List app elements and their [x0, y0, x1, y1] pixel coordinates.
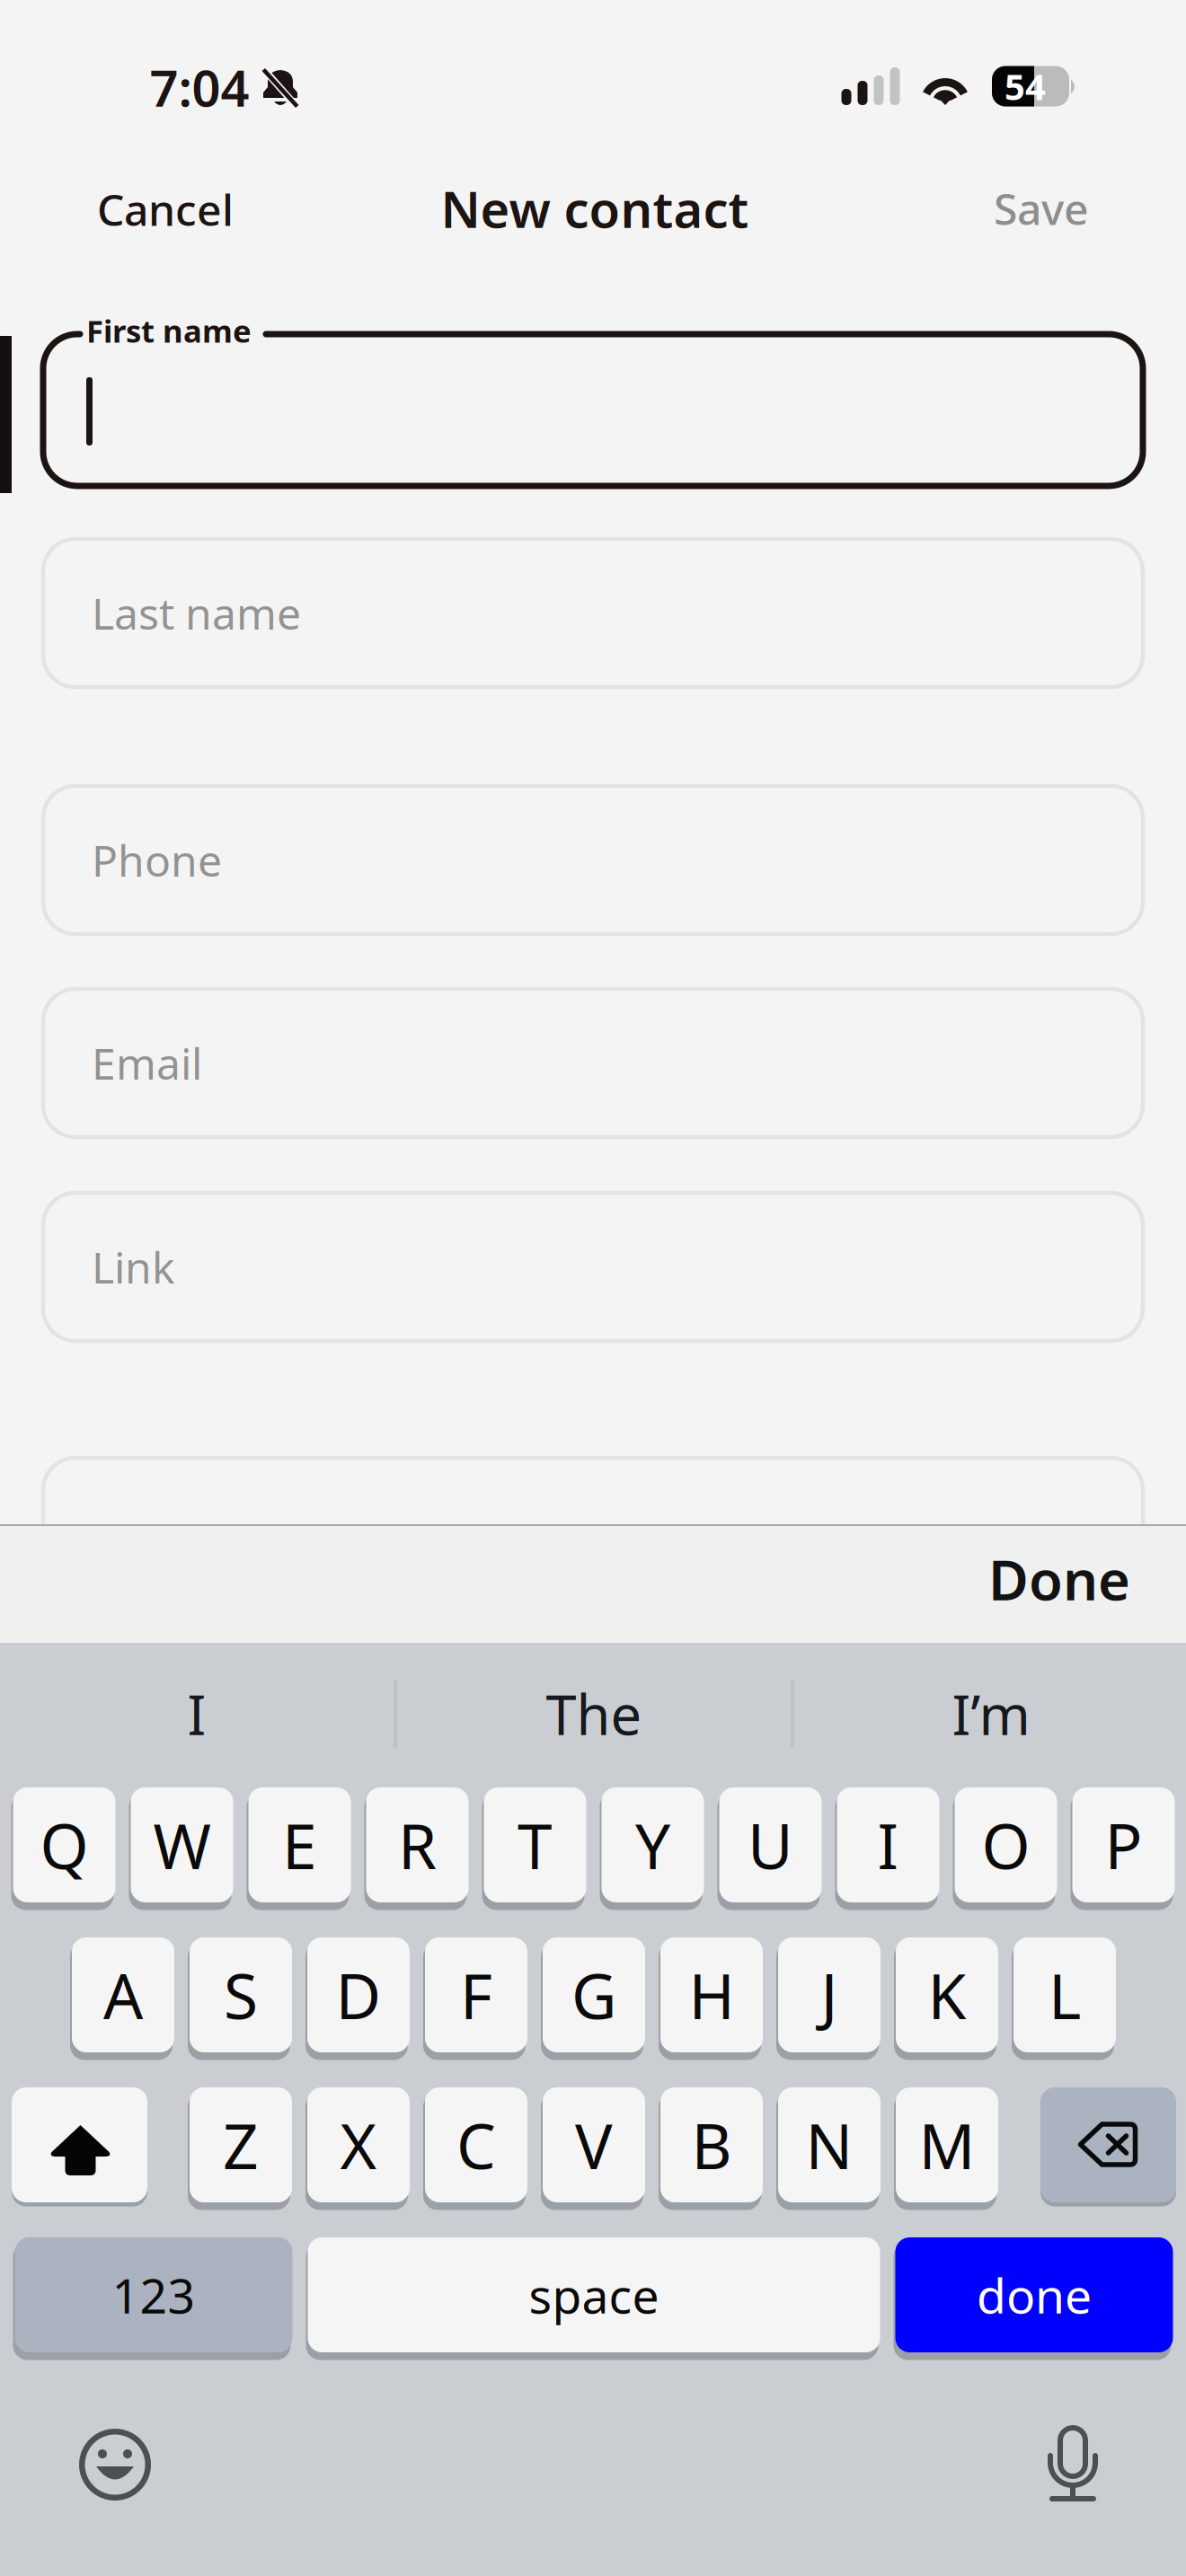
button[interactable]: N — [778, 2085, 881, 2205]
button[interactable]: P — [1072, 1785, 1175, 1905]
button[interactable]: Z — [190, 2085, 292, 2205]
button[interactable]: 123 — [15, 2235, 292, 2355]
staticText: G — [571, 1954, 616, 2036]
button[interactable]: S — [190, 1935, 292, 2055]
button[interactable]: space — [308, 2235, 880, 2355]
staticText: N — [805, 2104, 853, 2186]
button[interactable]: A — [72, 1935, 174, 2055]
staticText: Q — [40, 1804, 89, 1886]
staticText: L — [1049, 1954, 1081, 2036]
button[interactable]: W — [131, 1785, 233, 1905]
button[interactable]: Emoji — [61, 2409, 169, 2520]
button[interactable]: Cancel — [72, 157, 259, 261]
staticText: 7:04 — [150, 54, 249, 121]
button[interactable]: Q — [13, 1785, 115, 1905]
staticText: P — [1105, 1804, 1142, 1886]
staticText: Link — [92, 1238, 175, 1295]
staticText: done — [977, 2263, 1092, 2327]
button[interactable]: The — [397, 1643, 791, 1785]
button[interactable]: U — [719, 1785, 822, 1905]
button[interactable]: J — [778, 1935, 881, 2055]
staticText: E — [282, 1804, 317, 1886]
button[interactable]: B — [660, 2085, 763, 2205]
button[interactable]: Delete — [1040, 2085, 1176, 2205]
button[interactable]: Y — [602, 1785, 704, 1905]
staticText: Cancel — [97, 181, 234, 238]
button[interactable]: H — [660, 1935, 763, 2055]
staticText: F — [460, 1954, 492, 2036]
button[interactable]: I — [837, 1785, 939, 1905]
button[interactable]: D — [307, 1935, 410, 2055]
button[interactable]: Save — [969, 156, 1114, 260]
staticText: 123 — [112, 2263, 195, 2327]
button[interactable]: V — [543, 2085, 645, 2205]
button[interactable]: O — [955, 1785, 1057, 1905]
button[interactable]: Dictation — [1019, 2409, 1127, 2520]
button[interactable]: L — [1013, 1935, 1116, 2055]
staticText: V — [575, 2104, 613, 2186]
button[interactable]: I’m — [794, 1643, 1186, 1785]
staticText: U — [748, 1804, 793, 1886]
staticText: R — [398, 1804, 437, 1886]
staticText: O — [982, 1804, 1030, 1886]
staticText: I’m — [952, 1677, 1030, 1750]
button[interactable]: Shift — [12, 2085, 147, 2205]
button[interactable]: done — [895, 2235, 1173, 2355]
staticText: First name — [86, 310, 252, 351]
staticText: Z — [223, 2104, 259, 2186]
staticText: J — [821, 1954, 838, 2036]
button[interactable]: R — [366, 1785, 469, 1905]
staticText: New contact — [441, 175, 749, 242]
button[interactable]: F — [425, 1935, 527, 2055]
staticText: The — [546, 1677, 642, 1750]
button[interactable]: M — [896, 2085, 998, 2205]
staticText: Phone — [92, 831, 222, 889]
staticText: A — [103, 1954, 143, 2036]
button[interactable]: G — [543, 1935, 645, 2055]
staticText: K — [928, 1954, 966, 2036]
staticText: S — [224, 1954, 258, 2036]
button[interactable]: I — [0, 1643, 394, 1785]
button[interactable]: K — [896, 1935, 998, 2055]
button[interactable]: T — [484, 1785, 586, 1905]
staticText: space — [529, 2263, 659, 2327]
staticText: Last name — [92, 584, 301, 642]
staticText: Email — [92, 1034, 202, 1092]
staticText: Y — [635, 1804, 670, 1886]
staticText: 54 — [1005, 62, 1046, 110]
staticText: I — [877, 1804, 899, 1886]
button[interactable]: Done — [961, 1530, 1186, 1639]
staticText: T — [518, 1804, 553, 1886]
staticText: Save — [994, 180, 1089, 237]
staticText: H — [689, 1954, 735, 2036]
button[interactable]: E — [248, 1785, 351, 1905]
staticText: W — [153, 1804, 211, 1886]
staticText: M — [919, 2104, 975, 2186]
staticText: C — [456, 2104, 496, 2186]
button[interactable]: C — [425, 2085, 527, 2205]
staticText: I — [187, 1677, 206, 1750]
staticText: D — [336, 1954, 381, 2036]
staticText: X — [340, 2104, 377, 2186]
staticText: B — [691, 2104, 732, 2186]
staticText: Done — [988, 1542, 1130, 1616]
button[interactable]: X — [307, 2085, 410, 2205]
